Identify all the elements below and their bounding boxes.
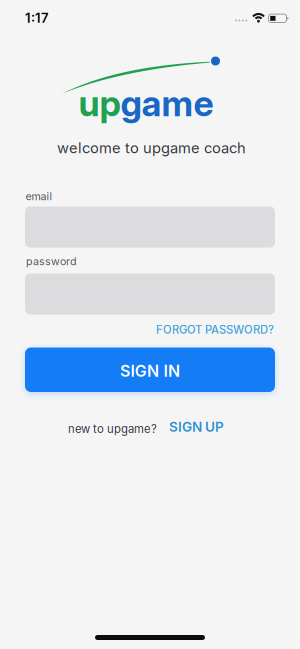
staticText: email [25, 190, 52, 203]
button[interactable]: FORGOT PASSWORD? [156, 323, 274, 337]
staticText: SIGN UP [169, 418, 224, 435]
staticText: new to upgame? [68, 422, 157, 436]
staticText: game [120, 82, 213, 125]
staticText: password [26, 255, 77, 268]
button[interactable]: SIGN UP [169, 418, 224, 435]
staticText: up [78, 82, 120, 125]
staticText: FORGOT PASSWORD? [156, 323, 274, 337]
staticText: SIGN IN [120, 361, 180, 381]
button[interactable]: SIGN IN [25, 347, 275, 392]
staticText: welcome to upgame coach [57, 139, 246, 157]
staticText: 1:17 [25, 10, 49, 26]
